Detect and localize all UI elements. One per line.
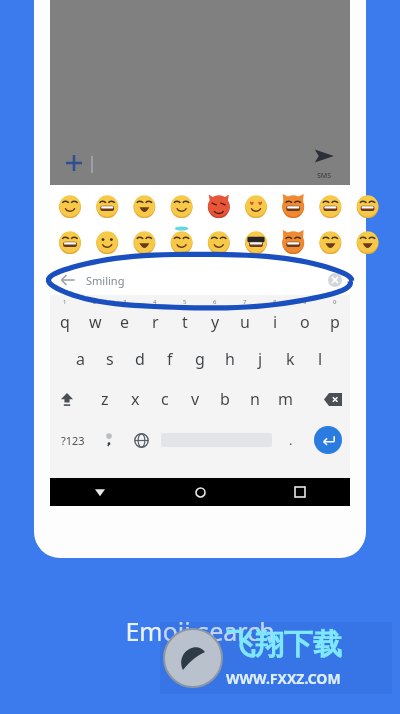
staticText: ?123 bbox=[61, 433, 85, 448]
staticText: n bbox=[250, 388, 260, 410]
staticText: b bbox=[220, 388, 230, 410]
button[interactable]: 1 bbox=[50, 295, 80, 339]
staticText: 6 bbox=[213, 298, 217, 306]
staticText: Smiling bbox=[86, 273, 125, 288]
button[interactable]: v bbox=[180, 379, 210, 419]
staticText: SMS bbox=[317, 171, 332, 181]
button[interactable]: n bbox=[240, 379, 270, 419]
button[interactable]: Enter bbox=[314, 426, 342, 454]
button[interactable]: l bbox=[305, 339, 335, 379]
staticText: h bbox=[225, 348, 235, 370]
button[interactable]: Comma bbox=[94, 419, 124, 461]
staticText: Emoji search bbox=[0, 614, 400, 648]
staticText: o bbox=[300, 311, 310, 333]
button[interactable]: Backspace bbox=[316, 379, 350, 419]
staticText: t bbox=[182, 311, 188, 333]
staticText: 4 bbox=[153, 298, 157, 306]
staticText: 8 bbox=[273, 298, 277, 306]
button[interactable]: 5 bbox=[170, 295, 200, 339]
button[interactable]: 0 bbox=[320, 295, 350, 339]
staticText: g bbox=[195, 348, 205, 370]
button[interactable]: Send SMS bbox=[306, 145, 342, 181]
button[interactable]: Shift bbox=[50, 379, 84, 419]
button[interactable]: Add attachment bbox=[62, 151, 86, 175]
button[interactable]: Change language bbox=[126, 419, 156, 461]
staticText: 5 bbox=[183, 298, 187, 306]
button[interactable]: f bbox=[155, 339, 185, 379]
staticText: y bbox=[211, 311, 220, 333]
button[interactable]: . bbox=[278, 419, 304, 461]
staticText: j bbox=[258, 348, 263, 370]
staticText: p bbox=[330, 311, 340, 333]
button[interactable]: d bbox=[125, 339, 155, 379]
staticText: WWW.FXXZ.COM bbox=[226, 669, 341, 688]
staticText: q bbox=[60, 311, 70, 333]
button[interactable]: s bbox=[95, 339, 125, 379]
button[interactable]: k bbox=[275, 339, 305, 379]
button[interactable]: a bbox=[65, 339, 95, 379]
staticText: m bbox=[278, 388, 293, 410]
button[interactable]: ?123 bbox=[54, 419, 92, 461]
button[interactable]: Back bbox=[60, 272, 76, 288]
button[interactable]: Home bbox=[150, 478, 250, 506]
staticText: 飞翔下载 bbox=[226, 626, 342, 663]
staticText: l bbox=[318, 348, 323, 370]
button[interactable]: x bbox=[120, 379, 150, 419]
staticText: 9 bbox=[303, 298, 307, 306]
button[interactable]: g bbox=[185, 339, 215, 379]
button[interactable]: b bbox=[210, 379, 240, 419]
staticText: z bbox=[101, 388, 109, 410]
button[interactable]: h bbox=[215, 339, 245, 379]
staticText: s bbox=[106, 348, 114, 370]
staticText: c bbox=[161, 388, 169, 410]
button[interactable]: j bbox=[245, 339, 275, 379]
staticText: k bbox=[286, 348, 295, 370]
button[interactable]: 9 bbox=[290, 295, 320, 339]
staticText: 3 bbox=[123, 298, 127, 306]
staticText: v bbox=[191, 388, 200, 410]
staticText: a bbox=[76, 348, 85, 370]
staticText: 7 bbox=[243, 298, 247, 306]
button[interactable]: m bbox=[270, 379, 300, 419]
staticText: 0 bbox=[333, 298, 337, 306]
staticText: e bbox=[120, 311, 130, 333]
button[interactable]: Space bbox=[158, 419, 274, 461]
button[interactable]: 6 bbox=[200, 295, 230, 339]
button[interactable]: Back bbox=[50, 265, 350, 295]
staticText: i bbox=[273, 311, 278, 333]
staticText: x bbox=[131, 388, 140, 410]
staticText: . bbox=[289, 431, 293, 449]
staticText: r bbox=[152, 311, 159, 333]
button[interactable]: c bbox=[150, 379, 180, 419]
button[interactable]: 3 bbox=[110, 295, 140, 339]
button[interactable]: 8 bbox=[260, 295, 290, 339]
button[interactable]: Recent apps bbox=[250, 478, 350, 506]
button[interactable]: 4 bbox=[140, 295, 170, 339]
staticText: 1 bbox=[63, 298, 67, 306]
button[interactable]: 7 bbox=[230, 295, 260, 339]
button[interactable]: z bbox=[90, 379, 120, 419]
button[interactable]: 2 bbox=[80, 295, 110, 339]
staticText: d bbox=[135, 348, 145, 370]
button[interactable]: Back bbox=[50, 478, 150, 506]
button[interactable]: Clear search bbox=[328, 273, 342, 287]
staticText: f bbox=[167, 348, 173, 370]
staticText: w bbox=[89, 311, 102, 333]
staticText: 2 bbox=[93, 298, 97, 306]
staticText: u bbox=[240, 311, 250, 333]
